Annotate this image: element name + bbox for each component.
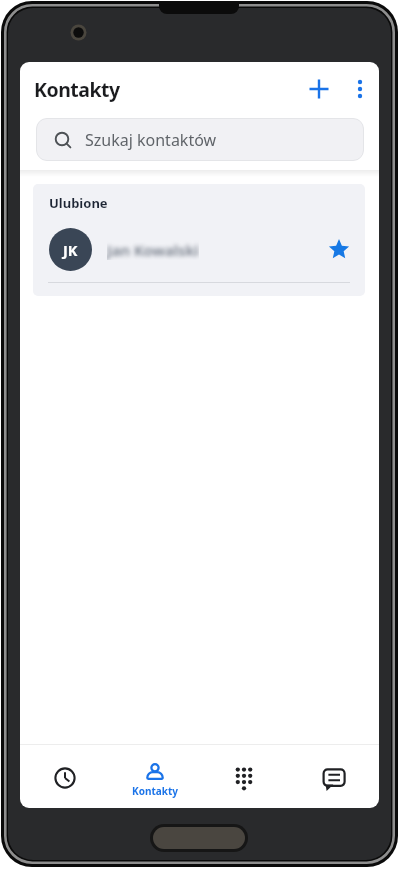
button[interactable] <box>305 75 333 103</box>
button[interactable] <box>299 750 369 806</box>
staticText: Kontakty <box>34 76 120 102</box>
button[interactable]: Kontakty <box>120 746 190 806</box>
staticText: JK <box>63 240 78 260</box>
button[interactable]: Szukaj kontaktów <box>36 118 364 161</box>
staticText: Szukaj kontaktów <box>85 129 217 151</box>
staticText: Jan Kowalski <box>107 240 199 260</box>
button[interactable] <box>30 750 100 806</box>
button[interactable]: JK <box>33 218 365 282</box>
button[interactable] <box>209 750 279 806</box>
button[interactable] <box>314 224 364 274</box>
staticText: Kontakty <box>132 784 178 798</box>
staticText: Ulubione <box>49 194 108 212</box>
button[interactable] <box>348 75 372 103</box>
